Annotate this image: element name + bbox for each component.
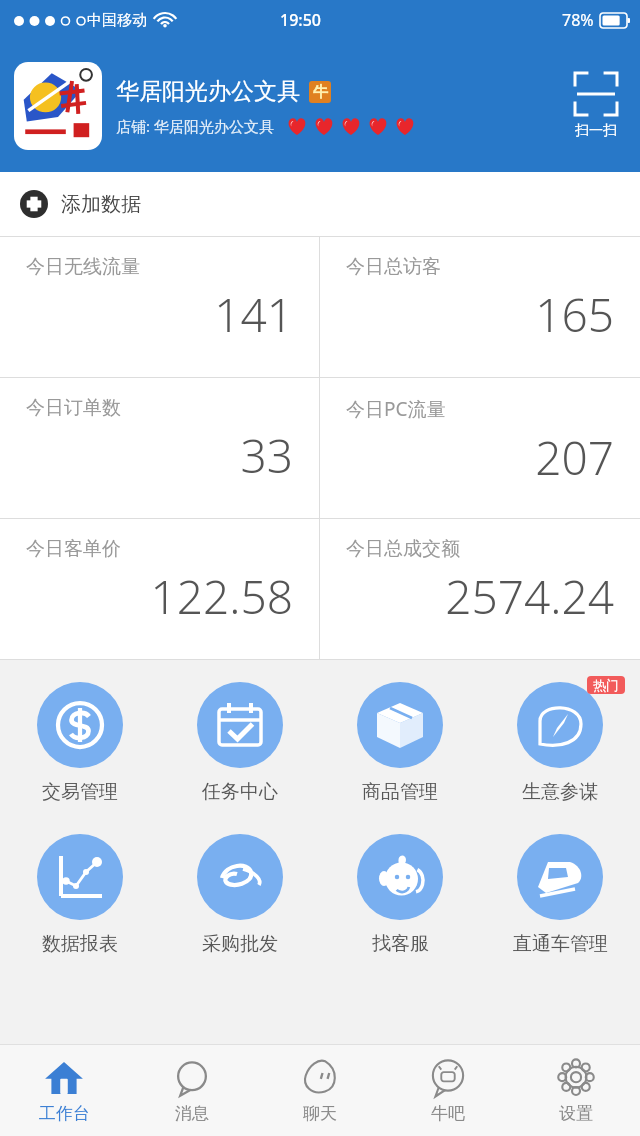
staticText: 中国移动 [87,11,147,30]
button[interactable]: 采购批发 [160,830,320,960]
button[interactable]: 任务中心 [160,678,320,808]
staticText: 今日总访客 [346,255,441,279]
staticText: 2574.24 [346,565,614,628]
staticText: 141 [26,283,293,346]
staticText: 设置 [559,1103,593,1124]
button[interactable]: 今日订单数 [0,378,319,518]
button[interactable]: 今日总访客 [320,237,640,377]
staticText: 33 [26,424,293,487]
staticText: 今日无线流量 [26,255,140,279]
staticText: 华居阳光办公文具 [116,77,300,106]
button[interactable]: 今日无线流量 [0,237,319,377]
staticText: 数据报表 [42,932,118,956]
staticText: 今日客单价 [26,537,121,561]
button[interactable]: 数据报表 [0,830,160,960]
staticText: 聊天 [303,1103,337,1124]
button[interactable]: 设置 [512,1044,640,1136]
button[interactable]: 牛吧 [384,1044,512,1136]
staticText: 今日PC流量 [346,396,446,422]
button[interactable]: 聊天 [256,1044,384,1136]
button[interactable]: 商品管理 [320,678,480,808]
staticText: 找客服 [372,932,429,956]
staticText: 消息 [175,1103,209,1124]
staticText: 今日总成交额 [346,537,460,561]
staticText: 工作台 [39,1103,90,1124]
button[interactable]: 消息 [128,1044,256,1136]
staticText: 生意参谋 [522,780,598,804]
staticText: 任务中心 [202,780,278,804]
staticText: 牛吧 [431,1103,465,1124]
staticText: 207 [346,426,614,489]
staticText: 牛 [313,83,328,102]
staticText: 直通车管理 [513,932,608,956]
button[interactable]: 添加数据 [0,172,640,236]
button[interactable]: 热门 [480,678,640,808]
button[interactable]: 找客服 [320,830,480,960]
staticText: 今日订单数 [26,396,121,420]
button[interactable]: 工作台 [0,1044,128,1136]
button[interactable]: 今日总成交额 [320,519,640,659]
staticText: 交易管理 [42,780,118,804]
staticText: 热门 [593,677,619,693]
button[interactable]: 交易管理 [0,678,160,808]
staticText: 店铺: 华居阳光办公文具 [116,116,274,136]
button[interactable]: 扫一扫 [560,40,632,172]
staticText: 122.58 [26,565,293,628]
staticText: 采购批发 [202,932,278,956]
staticText: 扫一扫 [575,122,617,140]
button[interactable]: 今日PC流量 [320,378,640,518]
button[interactable]: 今日客单价 [0,519,319,659]
staticText: 商品管理 [362,780,438,804]
staticText: 165 [346,283,614,346]
staticText: 添加数据 [61,192,141,217]
button[interactable]: 直通车管理 [480,830,640,960]
staticText: 19:50 [280,9,321,31]
staticText: 78% [562,9,594,31]
